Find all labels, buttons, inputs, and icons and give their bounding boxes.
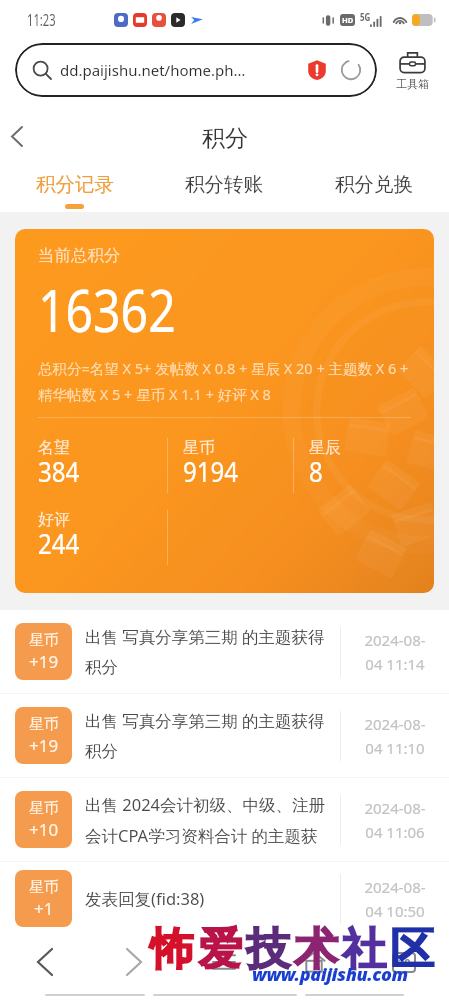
staticText: 16362 (38, 270, 176, 349)
staticText: +19 (29, 650, 59, 673)
staticText: 星辰 (309, 438, 341, 458)
staticText: 11:23 (27, 9, 56, 31)
staticText: 工具箱 (396, 77, 429, 91)
staticText: 区 (390, 922, 434, 977)
button[interactable]: 当前总积分 (15, 229, 434, 593)
staticText: 积分 (202, 124, 248, 153)
button[interactable]: 积分兑换 (299, 160, 449, 212)
staticText: 社 (342, 922, 386, 977)
staticText: 星币 (29, 799, 59, 818)
button[interactable]: 星币 (0, 694, 449, 778)
button[interactable]: Home (269, 935, 359, 989)
staticText: 爱 (198, 922, 242, 977)
button[interactable]: Menu (179, 935, 269, 989)
button[interactable]: dd.paijishu.net/home.ph… (15, 43, 377, 97)
button[interactable]: Security warning (306, 59, 328, 81)
staticText: 2024-08- 04 10:50 (341, 877, 449, 921)
button[interactable]: Back (0, 935, 89, 989)
button[interactable]: Tabs (359, 935, 449, 989)
staticText: www.paijishu.com (252, 962, 408, 987)
staticText: 术 (294, 922, 338, 977)
staticText: 出售 写真分享第三期 的主题获得积分 (85, 625, 333, 678)
staticText: 技 (246, 922, 290, 977)
staticText: 8 (309, 452, 324, 487)
staticText: 星币 (29, 878, 59, 897)
staticText: dd.paijishu.net/home.ph… (60, 60, 302, 80)
staticText: 星币 (29, 631, 59, 650)
button[interactable]: 积分记录 (0, 160, 149, 212)
button[interactable]: 积分转账 (149, 160, 299, 212)
staticText: 当前总积分 (38, 245, 121, 266)
staticText: 20 (398, 955, 411, 970)
staticText: 出售 写真分享第三期 的主题获得积分 (85, 709, 333, 762)
staticText: 积分记录 (36, 172, 114, 197)
button[interactable]: Forward (89, 935, 179, 989)
staticText: 244 (38, 524, 80, 559)
staticText: 2024-08- 04 11:14 (341, 630, 449, 674)
staticText: 星币 (183, 438, 215, 458)
staticText: 发表回复(fid:38) (85, 887, 333, 910)
staticText: 积分兑换 (335, 172, 413, 197)
staticText: 好评 (38, 510, 70, 530)
staticText: 9194 (183, 452, 239, 487)
staticText: 星币 (29, 715, 59, 734)
staticText: 名望 (38, 438, 70, 458)
staticText: 总积分=名望 X 5+ 发帖数 X 0.8 + 星辰 X 20 + 主题数 X … (38, 358, 420, 405)
staticText: HD (342, 15, 354, 25)
staticText: 积分转账 (185, 172, 263, 197)
button[interactable]: Refresh (340, 59, 362, 81)
staticText: +19 (29, 734, 59, 757)
staticText: +1 (34, 897, 54, 920)
button[interactable]: 星币 (0, 610, 449, 694)
button[interactable]: 星币 (0, 778, 449, 862)
button[interactable]: 星币 (0, 862, 449, 935)
staticText: +10 (29, 818, 59, 841)
button[interactable]: 工具箱 (388, 50, 436, 91)
button[interactable]: Back (0, 114, 39, 158)
staticText: 出售 2024会计初级、中级、注册会计CPA学习资料合计 的主题获 (85, 793, 333, 847)
staticText: 2024-08- 04 11:10 (341, 714, 449, 758)
staticText: 2024-08- 04 11:06 (341, 798, 449, 842)
staticText: 5G (360, 10, 370, 24)
staticText: 怖 (150, 922, 194, 977)
staticText: 384 (38, 452, 80, 487)
